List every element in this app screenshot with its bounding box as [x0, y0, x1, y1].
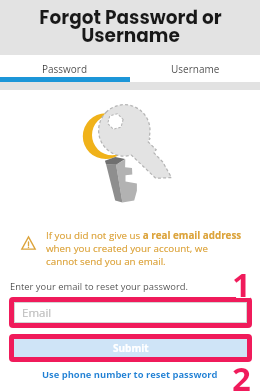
staticText: 2	[232, 356, 251, 392]
button[interactable]: Username	[130, 55, 260, 82]
staticText: 1	[232, 262, 251, 298]
button[interactable]: Use phone number to reset password	[42, 368, 218, 381]
staticText: Username	[171, 62, 220, 76]
button[interactable]: Submit	[14, 339, 247, 357]
staticText: Email	[22, 305, 52, 321]
staticText: 1	[232, 262, 251, 298]
staticText: Forgot Password or Username	[39, 5, 222, 48]
button[interactable]: Password	[0, 55, 130, 82]
button[interactable]: Email	[14, 302, 247, 323]
staticText: If you did not give us a real email addr…	[46, 229, 251, 268]
staticText: 2	[232, 356, 251, 392]
staticText: Password	[42, 62, 88, 76]
staticText: Submit	[113, 341, 149, 355]
staticText: Enter your email to reset your password.	[10, 280, 188, 293]
